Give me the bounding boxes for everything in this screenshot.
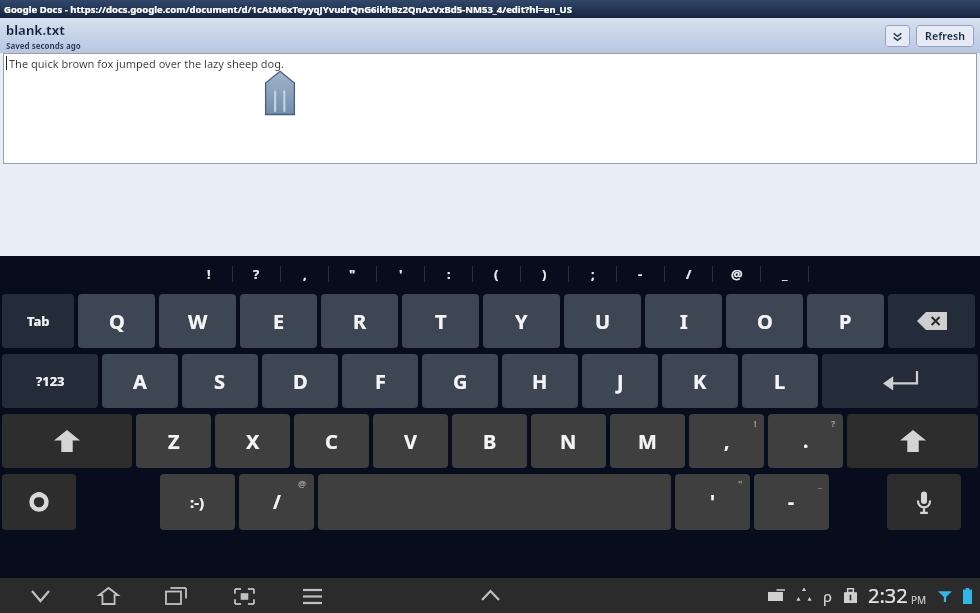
staticText: Y xyxy=(515,308,528,335)
button[interactable]: ) xyxy=(521,256,568,291)
button[interactable]: H xyxy=(502,354,578,408)
staticText: Z xyxy=(168,428,180,455)
staticText: C xyxy=(325,428,338,455)
button[interactable]: Sync xyxy=(796,588,812,604)
button[interactable]: ! xyxy=(689,414,764,468)
staticText: ! xyxy=(754,417,757,429)
staticText: ! xyxy=(207,265,211,283)
button[interactable]: / xyxy=(665,256,712,291)
button[interactable]: Y xyxy=(483,294,560,348)
button[interactable]: ! xyxy=(185,256,232,291)
button[interactable]: K xyxy=(662,354,738,408)
button[interactable]: More options xyxy=(885,25,910,47)
staticText: . xyxy=(803,428,809,454)
button[interactable]: W xyxy=(159,294,236,348)
button[interactable]: T xyxy=(402,294,479,348)
button[interactable]: " xyxy=(675,474,750,530)
button[interactable]: Z xyxy=(136,414,211,468)
staticText: PM xyxy=(911,593,927,607)
button[interactable]: X xyxy=(215,414,290,468)
button[interactable]: @ xyxy=(239,474,314,530)
staticText: ?123 xyxy=(36,372,65,390)
button[interactable]: P xyxy=(807,294,884,348)
button[interactable]: N xyxy=(531,414,606,468)
button[interactable]: I xyxy=(645,294,722,348)
staticText: T xyxy=(435,308,447,335)
button[interactable]: Menu xyxy=(294,580,330,612)
button[interactable]: ' xyxy=(377,256,424,291)
button[interactable]: G xyxy=(422,354,498,408)
button[interactable]: Refresh xyxy=(916,25,974,47)
button[interactable]: Voice input xyxy=(887,474,961,530)
staticText: J xyxy=(617,368,624,395)
staticText: Refresh xyxy=(925,29,966,43)
button[interactable]: Recent apps xyxy=(158,580,194,612)
staticText: G xyxy=(453,368,468,395)
button[interactable]: E xyxy=(240,294,317,348)
staticText: _ xyxy=(818,477,822,489)
staticText: @ xyxy=(298,477,307,489)
staticText: E xyxy=(273,308,285,335)
button[interactable]: O xyxy=(726,294,803,348)
staticText: :-) xyxy=(190,492,205,512)
staticText: X xyxy=(246,428,260,455)
other: Text cursor handle xyxy=(256,67,304,121)
staticText: ) xyxy=(542,265,547,283)
staticText: I xyxy=(680,308,688,335)
button[interactable]: V xyxy=(373,414,448,468)
button[interactable]: @ xyxy=(713,256,760,291)
button[interactable]: Backspace xyxy=(888,294,975,348)
button[interactable]: ?123 xyxy=(2,354,98,408)
button[interactable]: U xyxy=(564,294,641,348)
button[interactable]: ( xyxy=(473,256,520,291)
button[interactable]: S xyxy=(182,354,258,408)
staticText: ' xyxy=(399,265,403,283)
staticText: F xyxy=(375,368,386,395)
button[interactable]: F xyxy=(342,354,418,408)
button[interactable]: ; xyxy=(569,256,616,291)
button[interactable]: Keyboard xyxy=(768,590,785,601)
button[interactable]: Keyboard settings xyxy=(2,474,76,530)
button[interactable]: B xyxy=(452,414,527,468)
button[interactable]: :-) xyxy=(160,474,235,530)
button[interactable]: ? xyxy=(233,256,280,291)
button[interactable]: : xyxy=(425,256,472,291)
staticText: M xyxy=(638,428,657,455)
button[interactable]: Tab xyxy=(2,294,74,348)
button[interactable]: Q xyxy=(78,294,155,348)
button[interactable]: Enter xyxy=(822,354,978,408)
button[interactable]: ? xyxy=(768,414,843,468)
staticText: B xyxy=(483,428,497,455)
button[interactable]: L xyxy=(742,354,818,408)
staticText: K xyxy=(693,368,707,395)
button[interactable]: C xyxy=(294,414,369,468)
button[interactable]: J xyxy=(582,354,658,408)
button[interactable]: Shift xyxy=(847,414,978,468)
button[interactable]: _ xyxy=(754,474,829,530)
button[interactable]: Screenshot xyxy=(226,580,262,612)
button[interactable]: A xyxy=(102,354,178,408)
button[interactable]: , xyxy=(281,256,328,291)
button[interactable]: Hide keyboard xyxy=(470,578,510,613)
button[interactable]: M xyxy=(610,414,685,468)
staticText: ρ xyxy=(823,586,833,606)
staticText: - xyxy=(638,265,643,283)
button[interactable]: Home xyxy=(90,580,126,612)
staticText: N xyxy=(560,428,577,455)
button[interactable]: R xyxy=(321,294,398,348)
button[interactable]: " xyxy=(329,256,376,291)
staticText: P xyxy=(839,308,852,335)
staticText: ( xyxy=(494,265,499,283)
staticText: ; xyxy=(591,265,595,283)
button[interactable]: D xyxy=(262,354,338,408)
staticText: " xyxy=(349,265,356,283)
button[interactable]: Shift xyxy=(2,414,132,468)
staticText: U xyxy=(595,308,611,335)
button[interactable]: - xyxy=(617,256,664,291)
button[interactable]: The quick brown fox jumped over the lazy… xyxy=(3,53,977,164)
button[interactable]: _ xyxy=(761,256,808,291)
button[interactable]: Back xyxy=(22,580,58,612)
staticText: Saved seconds ago xyxy=(6,40,81,51)
button[interactable]: Downloads xyxy=(844,588,857,603)
